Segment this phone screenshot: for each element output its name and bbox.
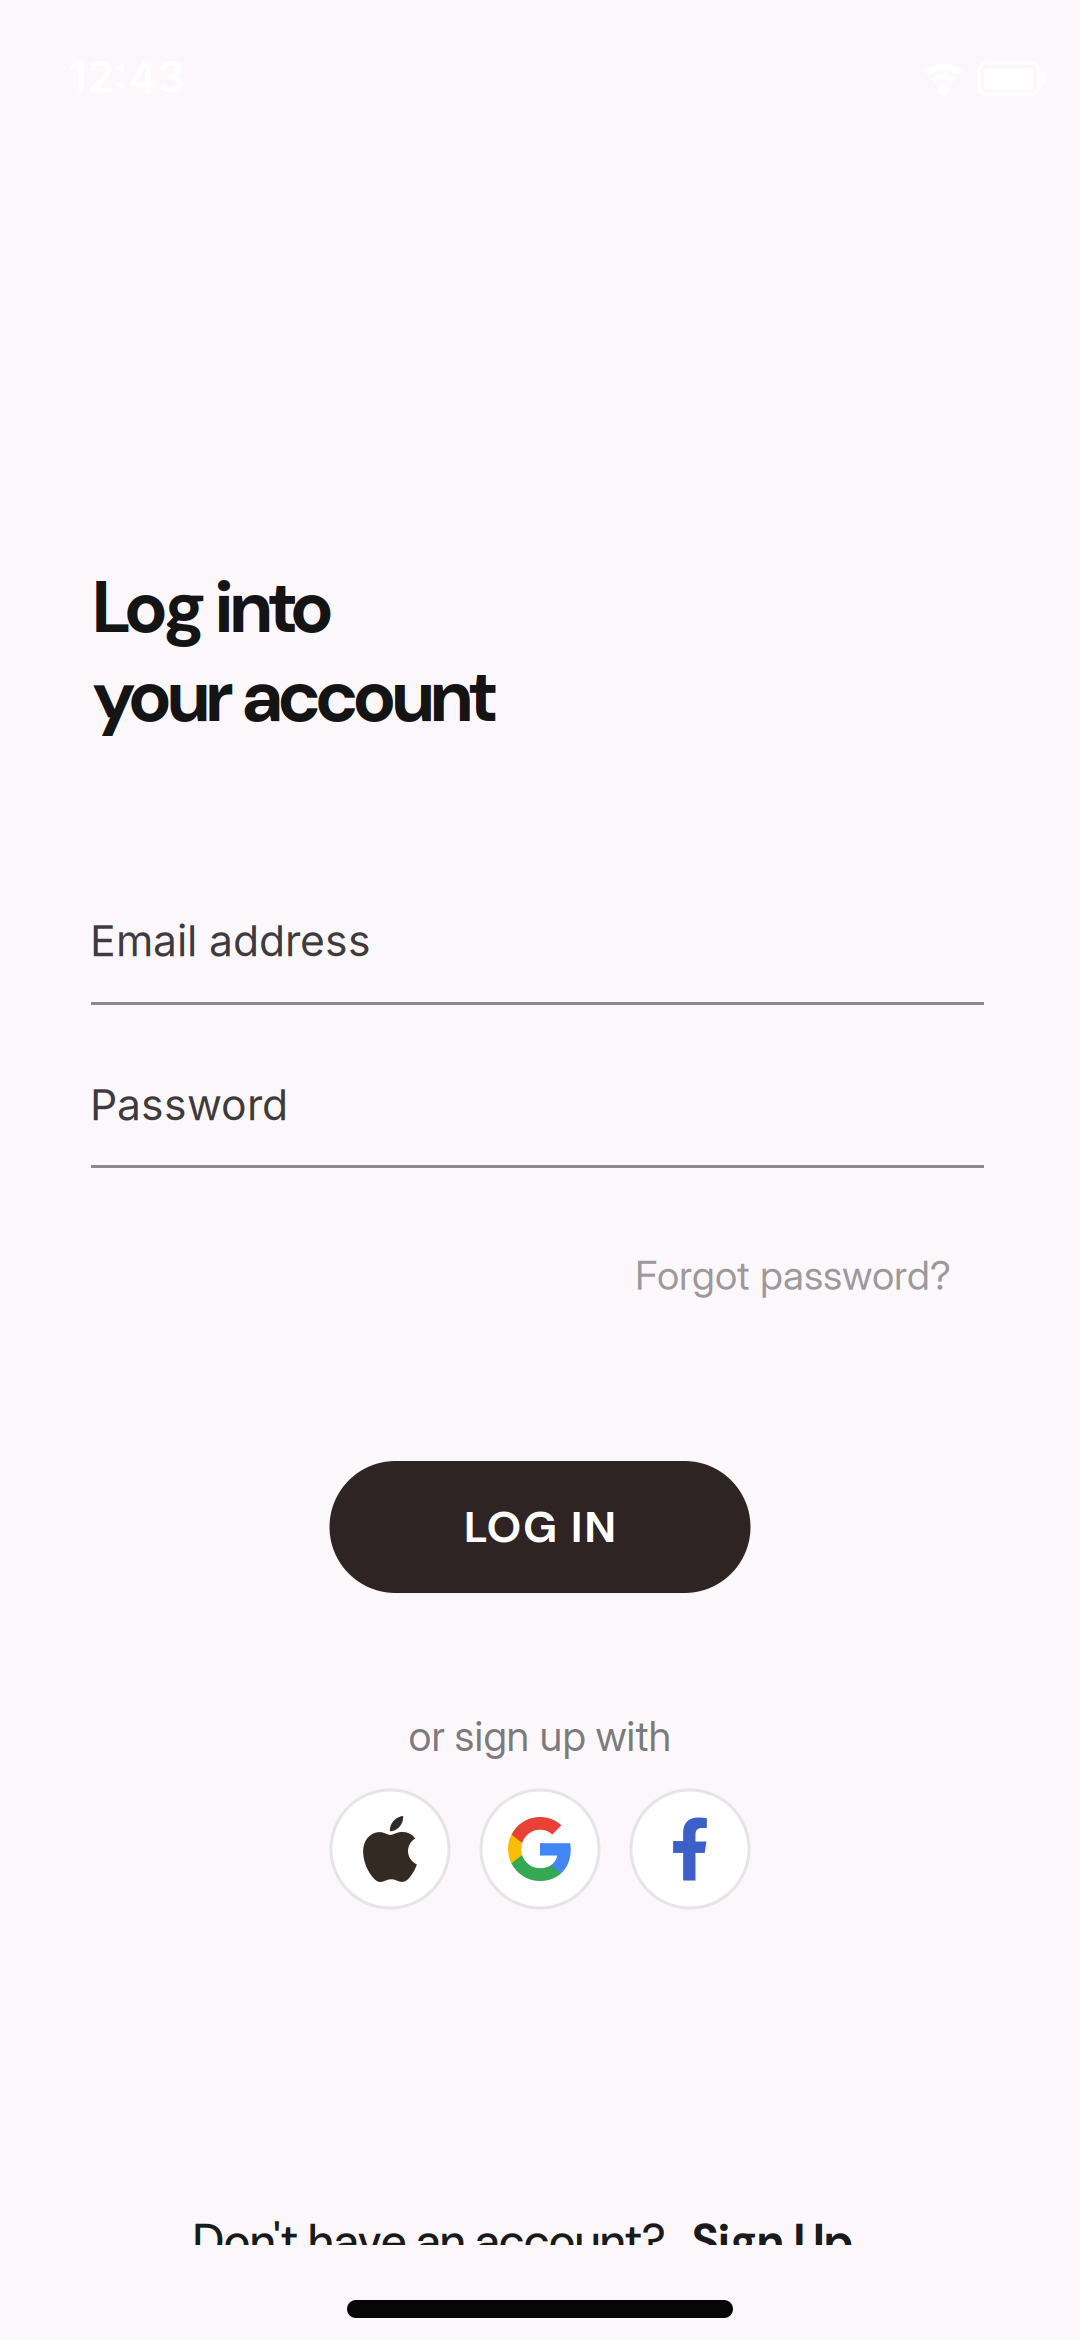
button[interactable]: Forgot password? bbox=[635, 1251, 951, 1299]
staticText: 12:43 bbox=[68, 50, 185, 103]
button[interactable]: Sign in with Google bbox=[481, 1790, 599, 1908]
staticText: Don't have an account? bbox=[193, 2211, 666, 2271]
staticText: LOG IN bbox=[464, 1498, 616, 1556]
staticText: Forgot password? bbox=[635, 1251, 951, 1299]
button[interactable]: Sign in with Apple bbox=[331, 1790, 449, 1908]
button[interactable]: LOG IN bbox=[329, 1461, 750, 1593]
staticText: Log into bbox=[93, 560, 332, 655]
staticText: or sign up with bbox=[408, 1711, 671, 1761]
button[interactable]: Sign Up bbox=[692, 2211, 853, 2271]
staticText: Email address bbox=[90, 915, 371, 967]
button[interactable]: Sign in with Facebook bbox=[631, 1790, 749, 1908]
staticText: your account bbox=[93, 649, 495, 744]
staticText: Sign Up bbox=[692, 2211, 853, 2271]
staticText: Password bbox=[90, 1079, 288, 1131]
